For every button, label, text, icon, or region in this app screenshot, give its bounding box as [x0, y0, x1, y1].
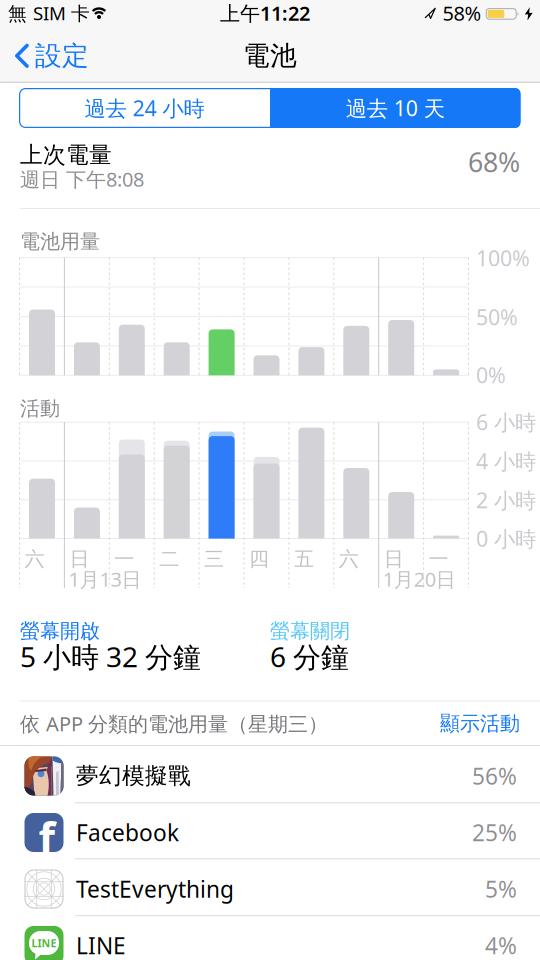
staticText: 25% — [472, 817, 517, 847]
button[interactable]: 顯示活動 — [420, 711, 520, 736]
staticText: 活動 — [20, 396, 60, 421]
staticText: 四 — [249, 547, 269, 571]
staticText: 日 — [69, 547, 89, 571]
staticText: 58% — [442, 0, 481, 26]
staticText: 2 小時 — [476, 486, 536, 514]
staticText: 過去 24 小時 — [84, 94, 204, 122]
staticText: 三 — [204, 547, 224, 571]
button[interactable]: TestEverything — [0, 861, 540, 917]
staticText: 一 — [114, 547, 134, 571]
staticText: 顯示活動 — [440, 711, 520, 736]
staticText: Facebook — [76, 817, 179, 847]
staticText: 68% — [468, 144, 520, 180]
button[interactable]: 過去 10 天 — [270, 88, 520, 128]
staticText: 50% — [476, 303, 518, 331]
staticText: 二 — [159, 547, 179, 571]
button[interactable]: 過去 24 小時 — [19, 88, 270, 128]
button[interactable]: LINE — [0, 917, 540, 960]
staticText: 電池用量 — [20, 229, 100, 254]
staticText: 過去 10 天 — [346, 94, 445, 122]
staticText: 電池 — [243, 39, 297, 72]
staticText: 0 小時 — [476, 524, 536, 553]
staticText: 夢幻模擬戰 — [76, 762, 191, 790]
staticText: 6 分鐘 — [270, 638, 349, 675]
staticText: 1月20日 — [383, 566, 456, 592]
staticText: 6 小時 — [476, 408, 536, 436]
staticText: 無 SIM 卡 — [8, 1, 90, 25]
staticText: 依 APP 分類的電池用量（星期三） — [20, 710, 328, 737]
staticText: 螢幕開啟 — [20, 619, 100, 643]
staticText: 5 小時 32 分鐘 — [20, 638, 201, 675]
staticText: 六 — [339, 547, 359, 571]
button[interactable]: 設定 — [0, 34, 110, 78]
button[interactable]: 夢幻模擬戰 — [0, 748, 540, 804]
staticText: 週日 下午8:08 — [20, 166, 144, 192]
staticText: f — [38, 809, 55, 866]
staticText: 1月13日 — [68, 566, 141, 592]
staticText: 4% — [485, 930, 517, 960]
staticText: 上午11:22 — [220, 0, 310, 26]
staticText: 五 — [294, 547, 314, 571]
staticText: 4 小時 — [476, 447, 536, 475]
staticText: LINE — [31, 936, 56, 950]
staticText: 螢幕關閉 — [270, 619, 350, 643]
staticText: 5% — [485, 874, 517, 904]
staticText: 日 — [384, 547, 404, 571]
staticText: 六 — [24, 547, 44, 571]
button[interactable]: f — [0, 804, 540, 860]
staticText: 上次電量 — [20, 141, 112, 169]
staticText: 0% — [476, 361, 506, 389]
staticText: 100% — [476, 244, 530, 272]
staticText: 一 — [429, 547, 449, 571]
staticText: 56% — [472, 761, 517, 791]
staticText: TestEverything — [76, 874, 234, 904]
staticText: LINE — [76, 930, 126, 960]
staticText: 設定 — [35, 39, 89, 72]
